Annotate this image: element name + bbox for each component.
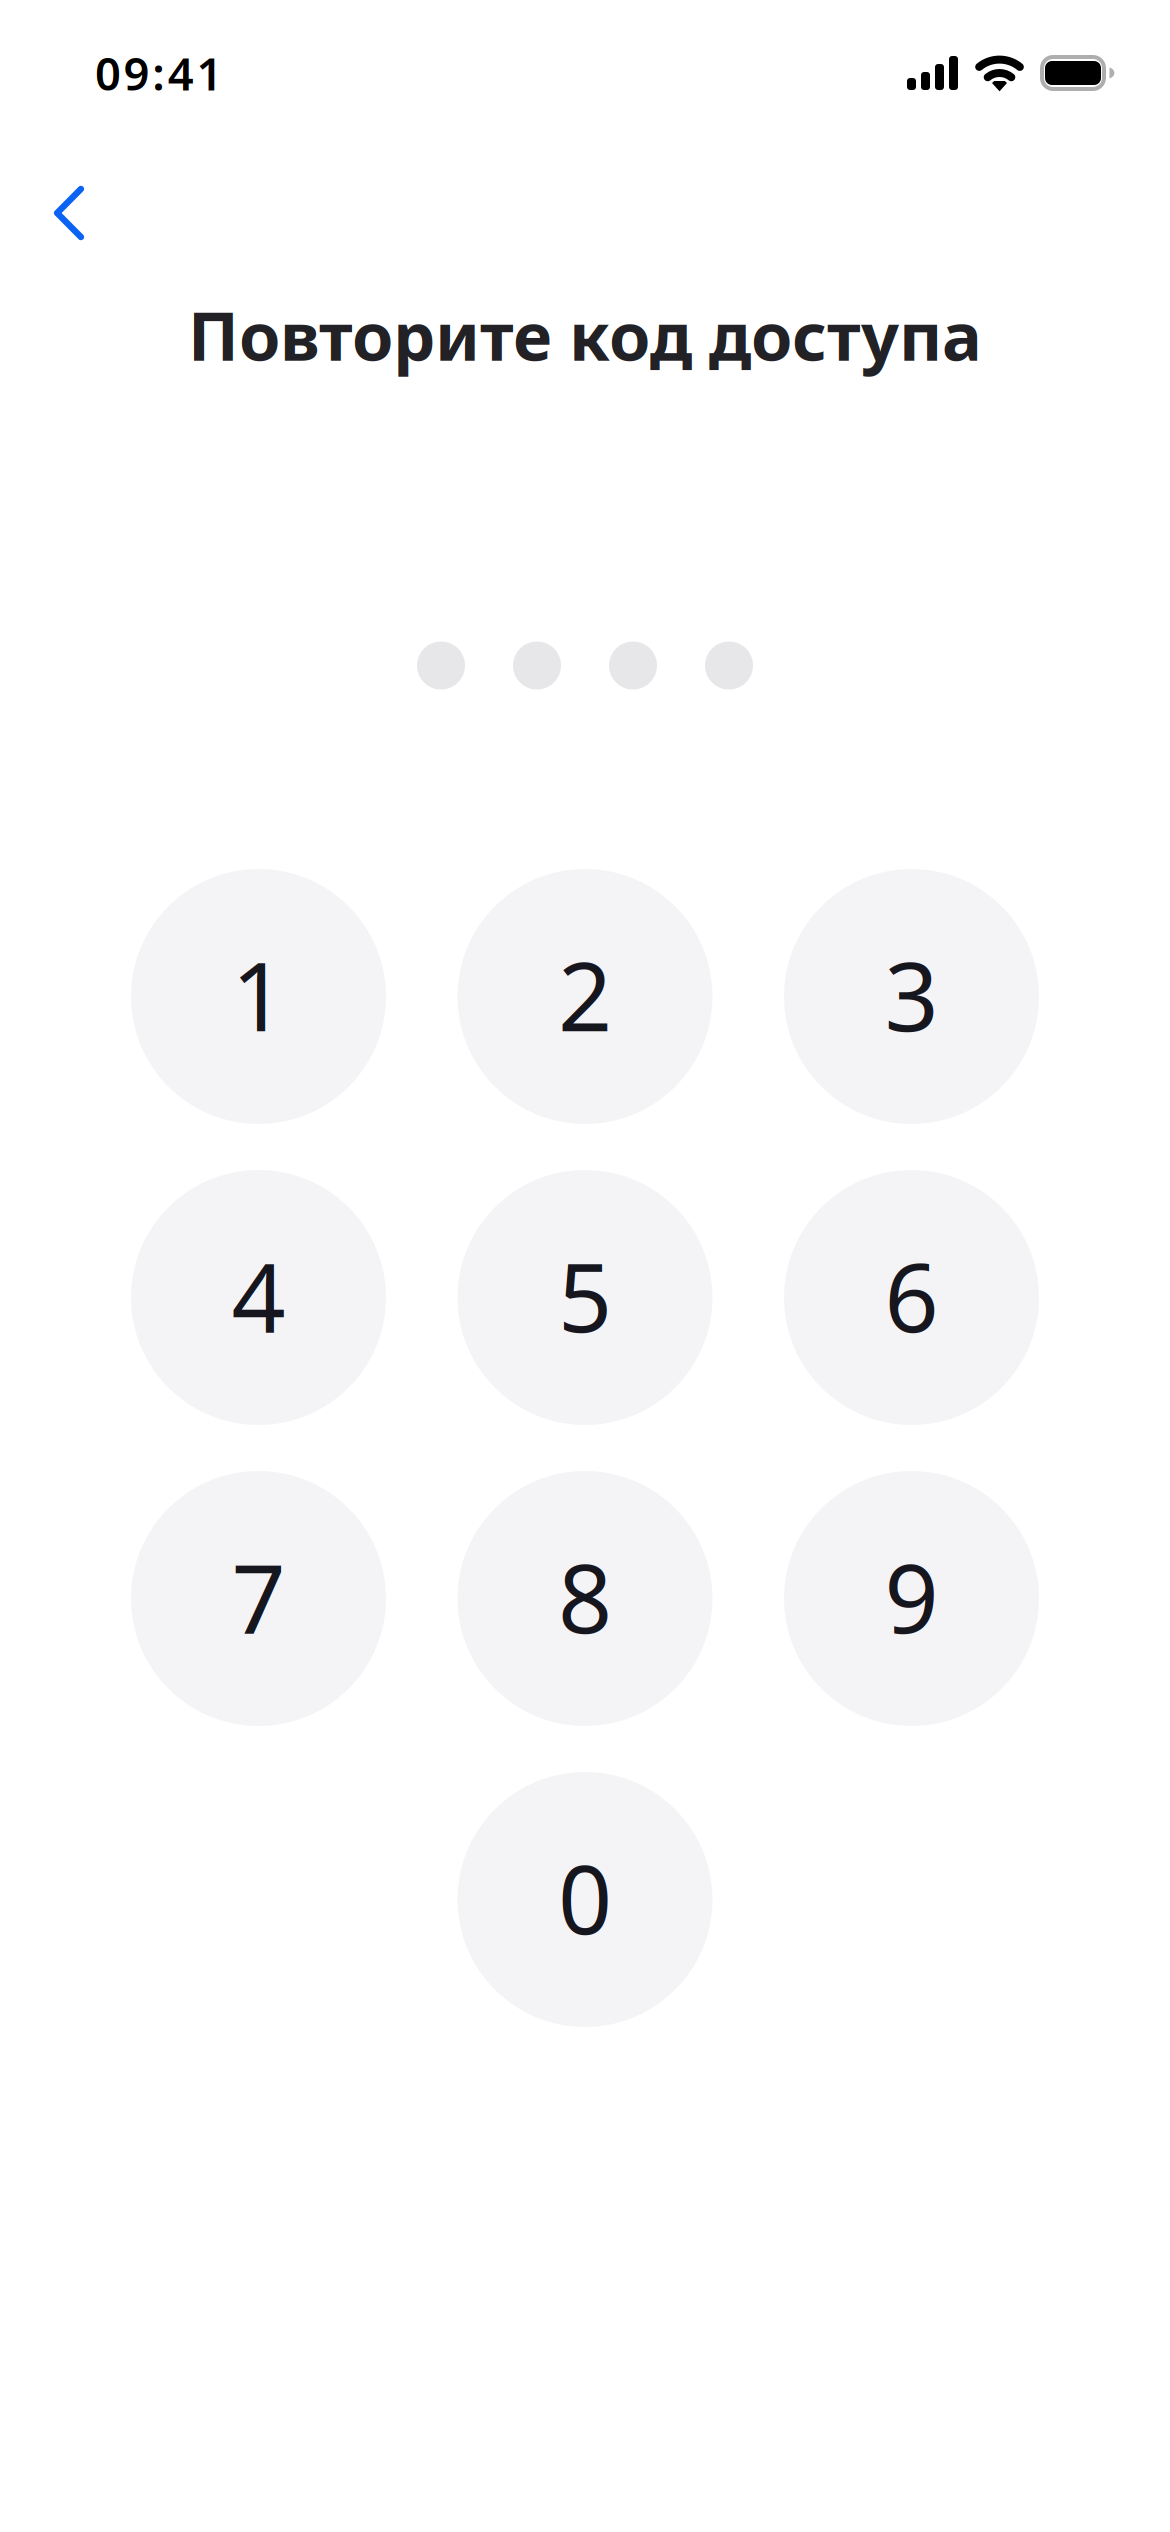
button[interactable]: 2 — [457, 869, 712, 1124]
button[interactable]: Back — [21, 165, 117, 261]
button[interactable]: 6 — [784, 1170, 1039, 1425]
button[interactable]: 8 — [457, 1471, 712, 1726]
button[interactable]: 5 — [457, 1170, 712, 1425]
staticText: 0 — [558, 1835, 612, 1960]
staticText: 7 — [231, 1534, 285, 1659]
button[interactable]: 1 — [131, 869, 386, 1124]
staticText: 5 — [558, 1233, 612, 1358]
button[interactable]: 0 — [457, 1772, 712, 2027]
staticText: 4 — [231, 1233, 285, 1358]
staticText: 6 — [884, 1233, 938, 1358]
staticText: 09:41 — [95, 43, 222, 103]
button[interactable]: 9 — [784, 1471, 1039, 1726]
staticText: 8 — [558, 1534, 612, 1659]
staticText: 1 — [231, 932, 285, 1057]
button[interactable]: 4 — [131, 1170, 386, 1425]
staticText: 2 — [558, 932, 612, 1057]
staticText: 9 — [884, 1534, 938, 1659]
button[interactable]: 3 — [784, 869, 1039, 1124]
button[interactable]: 7 — [131, 1471, 386, 1726]
staticText: 3 — [884, 932, 938, 1057]
staticText: Повторите код доступа — [188, 291, 982, 379]
